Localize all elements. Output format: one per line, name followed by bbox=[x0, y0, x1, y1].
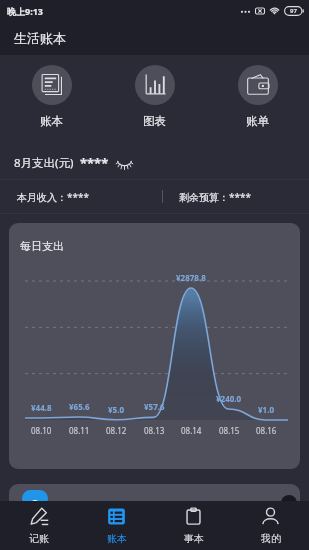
button[interactable]: 账本 bbox=[78, 501, 155, 550]
button[interactable]: Show amount bbox=[116, 155, 132, 171]
staticText: 剩余预算：**** bbox=[179, 190, 252, 204]
button[interactable]: 我的 bbox=[232, 501, 309, 550]
button[interactable]: 事本 bbox=[155, 501, 232, 550]
staticText: **** bbox=[80, 154, 109, 172]
staticText: 本月收入：**** bbox=[17, 190, 90, 204]
staticText: ¥5.0 bbox=[108, 404, 124, 415]
staticText: 生活账本 bbox=[14, 30, 66, 46]
staticText: 08.16 bbox=[256, 425, 277, 436]
button[interactable]: 图表 bbox=[103, 55, 206, 146]
staticText: 08.14 bbox=[181, 425, 202, 436]
staticText: ¥65.6 bbox=[69, 401, 90, 412]
staticText: 账本 bbox=[40, 114, 63, 128]
staticText: 图表 bbox=[143, 114, 166, 128]
staticText: ¥2878.8 bbox=[176, 272, 206, 283]
staticText: 08.12 bbox=[106, 425, 127, 436]
button[interactable]: 账本 bbox=[0, 55, 103, 146]
button[interactable]: 账单 bbox=[206, 55, 309, 146]
staticText: 08.15 bbox=[219, 425, 240, 436]
staticText: 97 bbox=[290, 7, 297, 15]
staticText: 事本 bbox=[184, 532, 204, 545]
staticText: ¥44.8 bbox=[31, 402, 52, 413]
staticText: 晚上9:13 bbox=[7, 5, 43, 17]
staticText: ¥1.0 bbox=[258, 404, 274, 415]
staticText: 我的 bbox=[261, 532, 281, 545]
staticText: 每日支出 bbox=[20, 239, 64, 253]
staticText: 08.10 bbox=[31, 425, 52, 436]
button[interactable]: 记账 bbox=[0, 501, 78, 550]
staticText: 08.11 bbox=[69, 425, 90, 436]
staticText: 08.13 bbox=[144, 425, 165, 436]
staticText: 8月支出(元) bbox=[14, 155, 74, 171]
staticText: ¥57.6 bbox=[144, 401, 165, 412]
staticText: 账单 bbox=[246, 114, 269, 128]
button[interactable] bbox=[9, 484, 300, 501]
staticText: ¥240.0 bbox=[216, 393, 242, 404]
staticText: 账本 bbox=[107, 532, 127, 545]
staticText: 记账 bbox=[29, 532, 49, 545]
